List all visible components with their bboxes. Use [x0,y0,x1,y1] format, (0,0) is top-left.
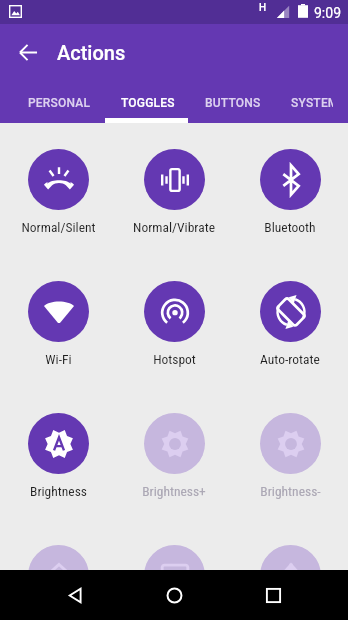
button[interactable]: Navigate up [8,32,48,72]
staticText: Bluetooth [264,219,316,235]
button[interactable]: SYSTEM [276,80,348,123]
button[interactable]: Bluetooth [232,123,348,255]
staticText: Actions [57,41,126,64]
staticText: BUTTONS [205,96,261,110]
button[interactable]: Normal/Vibrate [116,123,232,255]
button[interactable]: BUTTONS [190,80,276,123]
button[interactable]: Home [0,519,116,620]
button[interactable]: Hotspot [116,255,232,387]
staticText: TOGGLES [121,96,175,110]
staticText: Wi-Fi [45,351,72,367]
button[interactable]: Brightness+ [116,387,232,519]
staticText: Auto-rotate [260,351,320,367]
button[interactable]: Brightness- [232,387,348,519]
staticText: SYSTEM [291,96,333,110]
staticText: Normal/Vibrate [133,219,215,235]
staticText: H [259,2,267,14]
button[interactable]: Auto-rotate [232,255,348,387]
button[interactable]: Wi-Fi [0,255,116,387]
staticText: Normal/Silent [21,219,96,235]
button[interactable]: Normal/Silent [0,123,116,255]
staticText: 9:09 [314,5,341,21]
staticText: Brightness- [260,483,321,499]
staticText: Hotspot [153,351,196,367]
staticText: Brightness [30,483,87,499]
staticText: Brightness+ [142,483,206,499]
button[interactable]: PERSONAL [13,80,106,123]
button[interactable]: Back [51,571,99,619]
button[interactable]: Recents [232,519,348,620]
button[interactable]: Recent apps [249,571,297,619]
button[interactable]: Brightness [0,387,116,519]
button[interactable]: TOGGLES [106,80,190,123]
button[interactable]: Home [150,571,198,619]
button[interactable]: Back [116,519,232,620]
staticText: PERSONAL [28,96,91,110]
